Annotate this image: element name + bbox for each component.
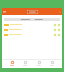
button[interactable]: Search [22, 59, 28, 68]
button[interactable]: Row action [4, 32, 60, 37]
button[interactable]: Title tab [27, 10, 38, 14]
button[interactable]: Row action [4, 22, 60, 27]
button[interactable] [4, 18, 60, 21]
button[interactable]: Row action [4, 27, 60, 32]
button[interactable]: Menu [3, 11, 6, 13]
button[interactable]: Alerts [36, 59, 42, 68]
button[interactable]: Profile [49, 59, 55, 68]
button[interactable]: Home [9, 59, 15, 68]
